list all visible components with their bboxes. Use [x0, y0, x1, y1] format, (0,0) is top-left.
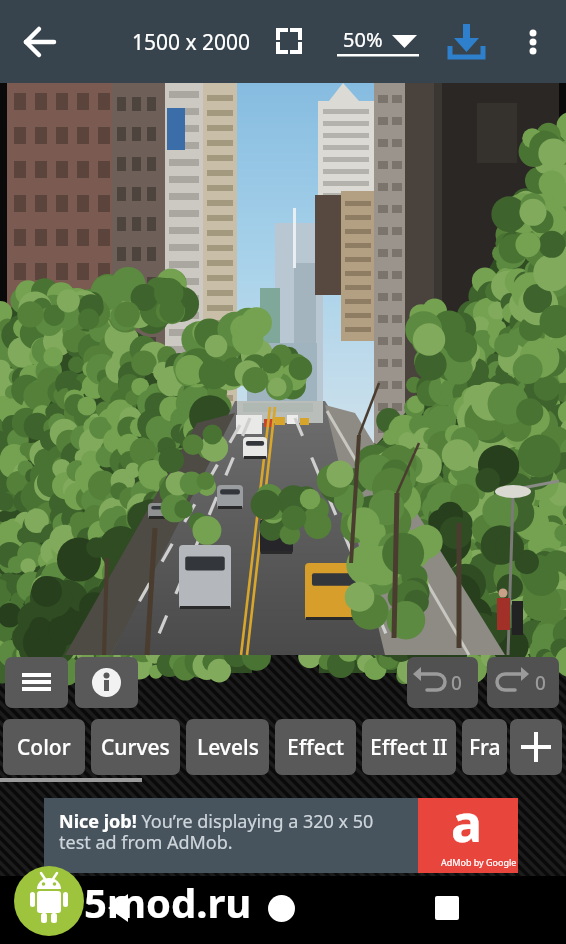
staticText: Fra	[469, 733, 501, 762]
button[interactable]: Curves	[91, 719, 180, 775]
button[interactable]	[423, 884, 471, 932]
staticText: Effect II	[370, 733, 448, 762]
staticText: Effect	[287, 733, 345, 762]
button[interactable]	[95, 880, 145, 930]
button[interactable]: Effect	[275, 719, 356, 775]
staticText: 0	[451, 670, 462, 696]
button[interactable]	[75, 657, 138, 708]
staticText: Curves	[101, 733, 170, 762]
staticText: 5mod.ru	[84, 875, 252, 929]
staticText: 1500 x 2000	[132, 28, 251, 57]
staticText: 0	[535, 670, 546, 696]
button[interactable]: 0	[407, 657, 478, 708]
staticText: Nice job! You’re displaying a 320 x 50 t…	[59, 809, 429, 855]
staticText: Levels	[197, 733, 259, 762]
staticText: Color	[17, 733, 71, 762]
button[interactable]: Effect II	[362, 719, 456, 775]
button[interactable]	[443, 18, 489, 64]
button[interactable]: Fra	[462, 719, 507, 775]
button[interactable]	[272, 24, 306, 58]
button[interactable]: 50%	[330, 18, 425, 63]
staticText: 50%	[343, 26, 383, 53]
button[interactable]: Nice job! You’re displaying a 320 x 50 t…	[44, 798, 518, 873]
button[interactable]	[5, 657, 68, 708]
button[interactable]	[18, 20, 62, 64]
button[interactable]: 0	[487, 657, 559, 708]
staticText: AdMob by Google	[441, 856, 517, 868]
staticText: a	[451, 786, 483, 857]
button[interactable]: Color	[3, 719, 85, 775]
button[interactable]	[257, 884, 305, 932]
button[interactable]: Levels	[186, 719, 269, 775]
button[interactable]	[510, 719, 562, 775]
button[interactable]	[515, 18, 553, 64]
